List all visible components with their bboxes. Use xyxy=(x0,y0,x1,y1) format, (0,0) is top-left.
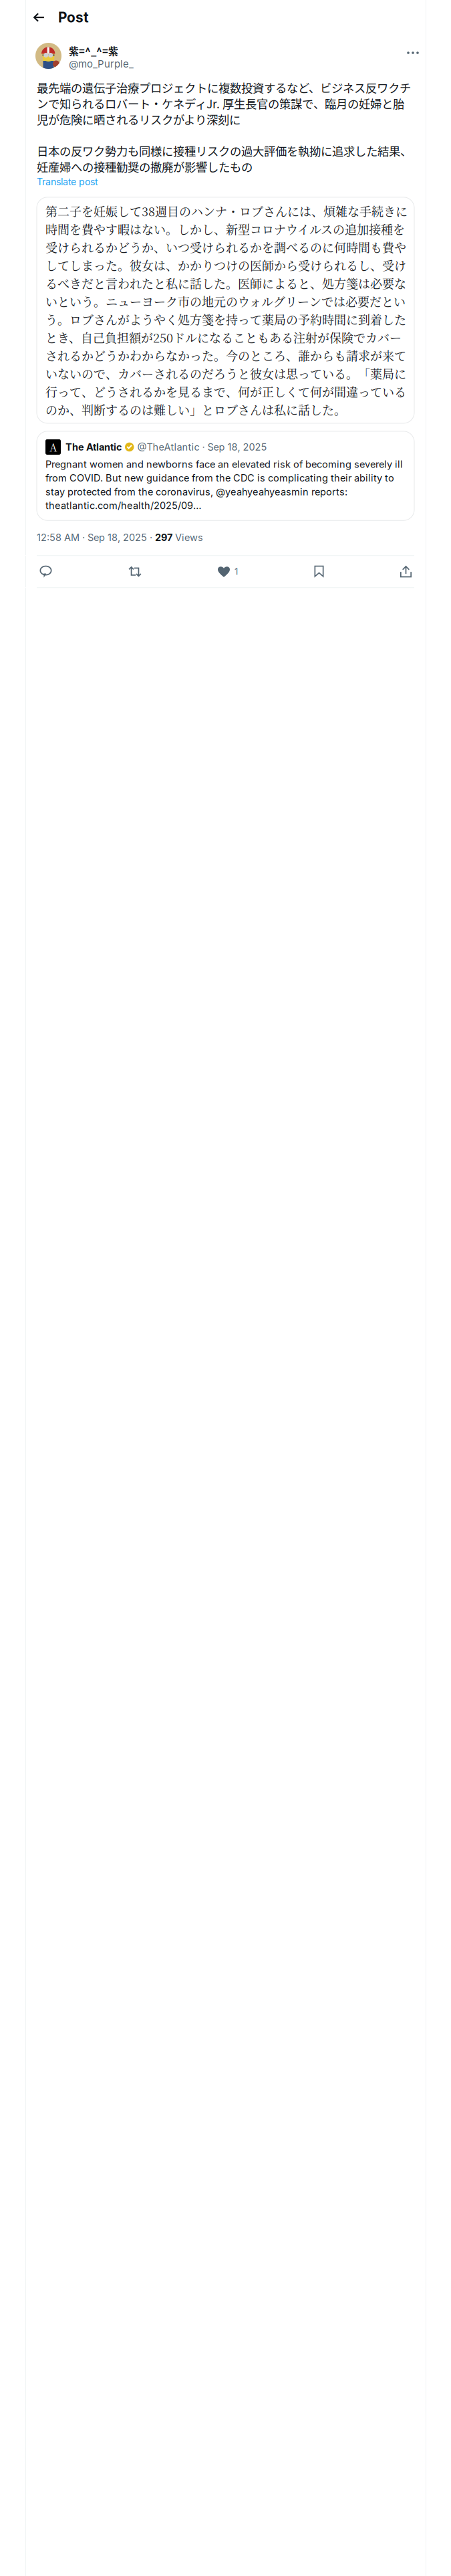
staticText: 受けられるかどうか、いつ受けられるかを調べるのに何時間も費や xyxy=(45,238,406,256)
staticText: 時間を費やす暇はない。しかし、新型コロナウイルスの追加接種を xyxy=(45,220,405,238)
button[interactable]: Post xyxy=(58,7,89,28)
staticText: 行って、どうされるかを見るまで、何が正しくて何が間違っている xyxy=(45,383,406,400)
staticText: A xyxy=(49,439,57,455)
staticText: いという。ニューヨーク市の地元のウォルグリーンでは必要だとい xyxy=(45,293,406,310)
button[interactable]: Repost xyxy=(123,559,147,584)
button[interactable]: Reply xyxy=(33,559,58,584)
staticText: 第二子を妊娠して38週目のハンナ・ロブさんには、煩雑な手続きに xyxy=(45,202,408,220)
staticText: 1 xyxy=(235,566,238,577)
staticText: Translate post xyxy=(37,176,98,188)
staticText: とき、自己負担額が250ドルになることもある注射が保険でカバー xyxy=(45,329,402,346)
button[interactable]: Like xyxy=(212,559,244,584)
button[interactable]: More xyxy=(403,43,423,63)
staticText: Post xyxy=(58,9,89,26)
staticText: 紫=^_^=紫 xyxy=(69,43,118,58)
staticText: のか、判断するのは難しい」とロブさんは私に話した。 xyxy=(45,401,346,418)
button[interactable]: Back xyxy=(28,7,49,28)
button[interactable]: Translate post xyxy=(37,176,98,188)
staticText: るべきだと言われたと私に話した。医師によると、処方箋は必要な xyxy=(45,275,406,292)
staticText: Views xyxy=(172,532,203,543)
staticText: してしまった。彼女は、かかりつけの医師から受けられるし、受け xyxy=(45,256,406,274)
staticText: Pregnant women and newborns face an elev… xyxy=(45,457,403,512)
button[interactable]: Bookmark xyxy=(308,559,330,584)
staticText: 最先端の遺伝子治療プロジェクトに複数投資するなど、ビジネス反ワクチンで知られるロ… xyxy=(37,79,411,127)
button[interactable]: Share xyxy=(394,559,418,584)
button[interactable]: Profile photo xyxy=(35,43,61,69)
staticText: 297 xyxy=(155,532,172,543)
staticText: されるかどうかわからなかった。今のところ、誰からも請求が来て xyxy=(45,347,406,364)
button[interactable]: A xyxy=(37,431,414,520)
staticText: う。ロブさんがようやく処方箋を持って薬局の予約時間に到着した xyxy=(45,311,406,328)
staticText: 12:58 AM · Sep 18, 2025 · xyxy=(37,532,155,543)
staticText: @TheAtlantic · Sep 18, 2025 xyxy=(137,441,267,453)
staticText: The Atlantic xyxy=(65,441,122,453)
staticText: いないので、カバーされるのだろうと彼女は思っている。「薬局に xyxy=(45,365,406,382)
staticText: 日本の反ワク勢力も同様に接種リスクの過大評価を執拗に追求した結果、妊産婦への接種… xyxy=(37,143,412,174)
staticText: @mo_Purple_ xyxy=(69,58,134,70)
